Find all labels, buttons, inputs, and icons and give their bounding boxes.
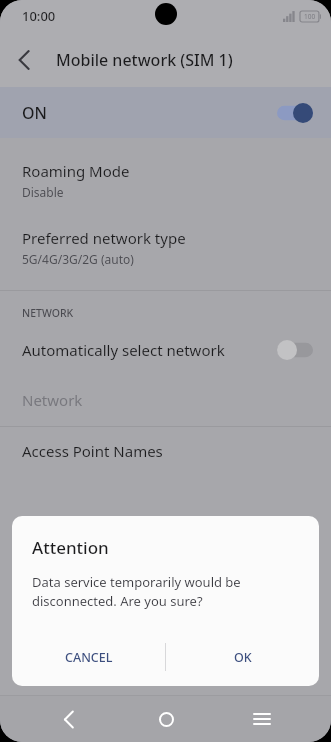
staticText: Automatically select network bbox=[22, 340, 277, 360]
button[interactable]: Recent apps bbox=[234, 696, 290, 742]
staticText: Roaming Mode bbox=[22, 161, 130, 181]
button[interactable]: CANCEL bbox=[12, 636, 165, 678]
button[interactable]: Preferred network type bbox=[0, 214, 331, 281]
staticText: Mobile network (SIM 1) bbox=[56, 49, 233, 71]
staticText: CANCEL bbox=[65, 649, 113, 666]
button[interactable]: Network bbox=[0, 374, 331, 426]
staticText: ON bbox=[22, 102, 47, 124]
button[interactable]: Back bbox=[0, 36, 48, 84]
staticText: 10:00 bbox=[22, 7, 56, 25]
button[interactable]: Back bbox=[41, 696, 97, 742]
button[interactable]: OK bbox=[166, 636, 319, 678]
button[interactable]: Home bbox=[138, 696, 194, 742]
staticText: Preferred network type bbox=[22, 228, 186, 248]
staticText: Network bbox=[22, 390, 83, 410]
staticText: Data service temporarily would be discon… bbox=[32, 573, 299, 610]
staticText: Disable bbox=[22, 184, 64, 200]
staticText: NETWORK bbox=[22, 306, 74, 320]
button[interactable]: Access Point Names bbox=[0, 427, 331, 475]
button[interactable]: Roaming Mode bbox=[0, 147, 331, 214]
staticText: Attention bbox=[32, 536, 109, 559]
staticText: 5G/4G/3G/2G (auto) bbox=[22, 251, 134, 267]
button[interactable]: ON bbox=[0, 87, 331, 138]
staticText: 100 bbox=[304, 12, 316, 21]
button[interactable]: Automatically select network bbox=[0, 326, 331, 374]
staticText: OK bbox=[234, 649, 252, 666]
staticText: Access Point Names bbox=[22, 441, 163, 461]
